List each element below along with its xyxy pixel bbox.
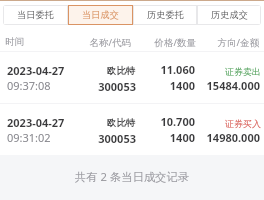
staticText: 300053 — [0, 131, 136, 146]
staticText: 历史成交 — [211, 9, 248, 21]
staticText: 2023-04-27 — [7, 115, 65, 130]
staticText: 方向/金额 — [0, 36, 259, 49]
staticText: 300053 — [0, 79, 136, 94]
staticText: 1400 — [0, 78, 195, 93]
staticText: 价格/数量 — [0, 36, 196, 49]
button[interactable]: 2023-04-27 — [0, 104, 264, 155]
button[interactable]: 当日委托 — [3, 5, 68, 25]
button[interactable]: 2023-04-27 — [0, 52, 264, 103]
button[interactable]: 当日成交 — [68, 5, 133, 25]
staticText: 时间 — [5, 36, 24, 48]
staticText: 欧比特 — [0, 117, 135, 129]
staticText: 证券卖出 — [0, 66, 261, 77]
staticText: 2023-04-27 — [7, 63, 65, 78]
staticText: 历史委托 — [147, 9, 184, 21]
staticText: 名称/代码 — [0, 36, 131, 49]
staticText: 欧比特 — [0, 65, 135, 77]
staticText: 证券买入 — [0, 118, 261, 129]
staticText: 1400 — [0, 130, 195, 145]
staticText: 当日委托 — [17, 9, 54, 21]
button[interactable]: 历史委托 — [133, 5, 197, 25]
staticText: 14980.000 — [0, 130, 260, 145]
button[interactable]: 时间 — [0, 32, 264, 51]
button[interactable]: 历史成交 — [197, 5, 261, 25]
staticText: 09:37:08 — [7, 78, 51, 93]
staticText: 11.060 — [0, 62, 195, 77]
staticText: 09:31:02 — [7, 130, 51, 145]
staticText: 共有 2 条当日成交记录 — [0, 169, 264, 184]
staticText: 15484.000 — [0, 78, 260, 93]
staticText: 当日成交 — [82, 9, 119, 21]
staticText: 10.700 — [0, 114, 195, 129]
